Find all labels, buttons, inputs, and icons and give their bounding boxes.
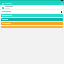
button[interactable]: More options — [1, 10, 63, 13]
button[interactable] — [1, 6, 63, 9]
button[interactable] — [1, 14, 63, 17]
button[interactable]: Search — [60, 2, 63, 5]
button[interactable] — [1, 18, 63, 21]
button[interactable] — [1, 22, 63, 25]
button[interactable]: Menu — [1, 2, 4, 5]
button[interactable]: More options — [61, 11, 62, 13]
